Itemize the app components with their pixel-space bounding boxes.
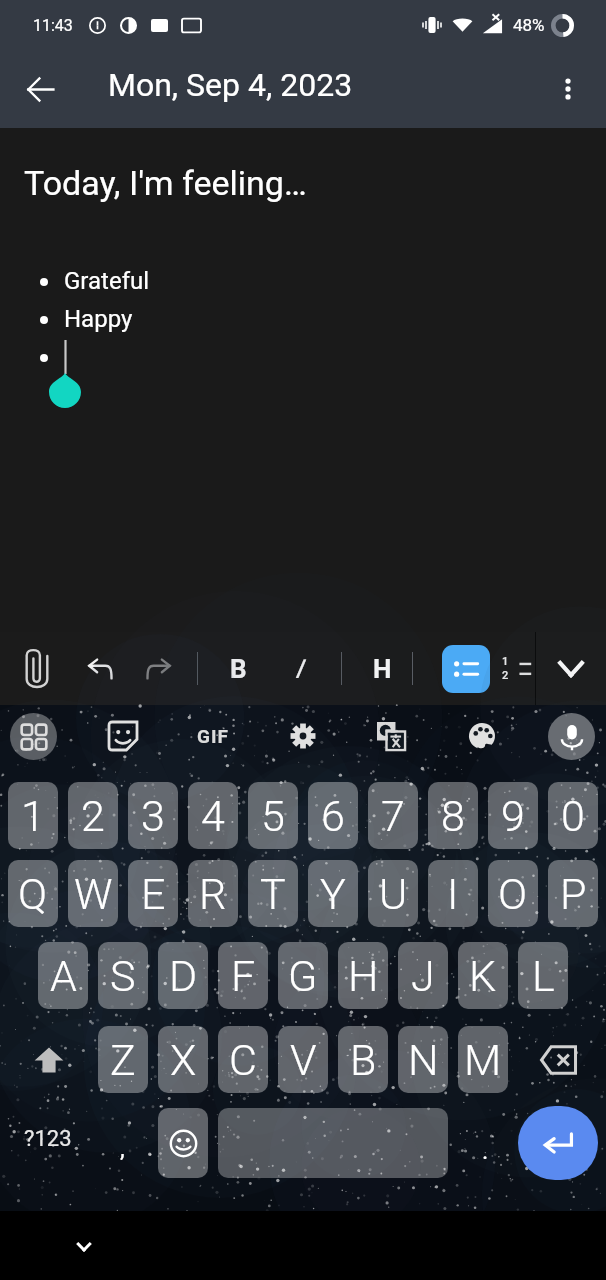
button[interactable]: H	[338, 942, 388, 1009]
staticText: I	[295, 654, 302, 684]
button[interactable]: R	[188, 860, 238, 927]
staticText: 0	[561, 791, 585, 841]
staticText: I	[447, 869, 459, 919]
button[interactable]: Stickers	[100, 713, 146, 759]
staticText: Y	[320, 869, 346, 919]
staticText: 1	[502, 655, 509, 668]
button[interactable]: Shift	[10, 1026, 88, 1093]
button[interactable]: .	[462, 1103, 508, 1181]
button[interactable]: Voice input	[548, 713, 595, 760]
button[interactable]: 7	[368, 782, 418, 849]
button[interactable]: I	[268, 632, 328, 705]
staticText: S	[110, 951, 136, 1001]
button[interactable]: A	[38, 942, 88, 1009]
button[interactable]: D	[158, 942, 208, 1009]
button[interactable]: Attach	[0, 632, 73, 705]
button[interactable]: 2	[68, 782, 118, 849]
staticText: L	[532, 951, 555, 1001]
button[interactable]: V	[278, 1026, 328, 1093]
button[interactable]: F	[218, 942, 268, 1009]
staticText: P	[560, 869, 587, 919]
staticText: 3	[141, 791, 165, 841]
button[interactable]: 1	[8, 782, 58, 849]
button[interactable]: Hide keyboard	[62, 1229, 106, 1265]
staticText: Today, I'm feeling…	[24, 163, 307, 203]
staticText: C	[229, 1035, 257, 1085]
button[interactable]: Translate	[368, 713, 414, 759]
staticText: GIF	[197, 725, 229, 747]
staticText: V	[290, 1035, 317, 1085]
button[interactable]: ,	[96, 1103, 142, 1181]
button[interactable]: Back	[12, 61, 68, 117]
button[interactable]: 6	[308, 782, 358, 849]
staticText: ?123	[24, 1126, 72, 1152]
staticText: O	[498, 869, 528, 919]
staticText: D	[169, 951, 198, 1001]
button[interactable]: Switch keyboard	[10, 713, 57, 760]
button[interactable]: Undo	[72, 632, 128, 705]
button[interactable]: W	[68, 860, 118, 927]
button[interactable]: N	[398, 1026, 448, 1093]
staticText: H	[373, 654, 392, 684]
button[interactable]: L	[518, 942, 568, 1009]
button[interactable]: O	[488, 860, 538, 927]
button[interactable]: Settings	[280, 713, 326, 759]
button[interactable]: J	[398, 942, 448, 1009]
staticText: Q	[18, 869, 48, 919]
staticText: F	[231, 951, 256, 1001]
staticText: M	[464, 1035, 502, 1085]
button[interactable]: 3	[128, 782, 178, 849]
button[interactable]: K	[458, 942, 508, 1009]
staticText: 1	[21, 791, 45, 841]
staticText: 6	[321, 791, 345, 841]
button[interactable]: C	[218, 1026, 268, 1093]
button[interactable]: I	[428, 860, 478, 927]
button[interactable]: Y	[308, 860, 358, 927]
button[interactable]: Redo	[131, 632, 187, 705]
button[interactable]: 9	[488, 782, 538, 849]
button[interactable]: 0	[548, 782, 598, 849]
staticText: .	[482, 1137, 489, 1165]
button[interactable]: Backspace	[519, 1026, 597, 1093]
staticText: B	[350, 1035, 377, 1085]
button[interactable]: H	[352, 632, 412, 705]
button[interactable]: More options	[542, 63, 594, 115]
button[interactable]: Q	[8, 860, 58, 927]
button[interactable]: Hide formatting toolbar	[536, 632, 606, 705]
button[interactable]: Space	[218, 1108, 448, 1178]
button[interactable]: T	[248, 860, 298, 927]
button[interactable]: E	[128, 860, 178, 927]
staticText: W	[74, 869, 113, 919]
staticText: K	[469, 951, 497, 1001]
staticText: Mon, Sep 4, 2023	[108, 66, 353, 104]
button[interactable]: G	[278, 942, 328, 1009]
button[interactable]: 5	[248, 782, 298, 849]
button[interactable]: B	[338, 1026, 388, 1093]
button[interactable]: S	[98, 942, 148, 1009]
button[interactable]: X	[158, 1026, 208, 1093]
button[interactable]: Bulleted list	[442, 645, 490, 693]
button[interactable]: P	[548, 860, 598, 927]
button[interactable]: Enter	[518, 1106, 598, 1180]
staticText: 2	[81, 791, 105, 841]
button[interactable]: 8	[428, 782, 478, 849]
staticText: 7	[381, 791, 405, 841]
staticText: 48%	[513, 15, 545, 35]
button[interactable]: Z	[98, 1026, 148, 1093]
staticText: Grateful	[64, 267, 150, 295]
button[interactable]: 4	[188, 782, 238, 849]
staticText: T	[260, 869, 286, 919]
button[interactable]: Themes	[459, 713, 505, 759]
button[interactable]: GIF	[188, 713, 238, 759]
button[interactable]: Emoji	[158, 1108, 208, 1178]
staticText: A	[50, 951, 77, 1001]
staticText: U	[379, 869, 408, 919]
button[interactable]: M	[458, 1026, 508, 1093]
staticText: 4	[201, 791, 225, 841]
button[interactable]: B	[208, 632, 268, 705]
staticText: 8	[441, 791, 465, 841]
button[interactable]: U	[368, 860, 418, 927]
button[interactable]: Numbered list	[496, 632, 536, 705]
staticText: H	[348, 951, 379, 1001]
button[interactable]: ?123	[0, 1103, 96, 1181]
